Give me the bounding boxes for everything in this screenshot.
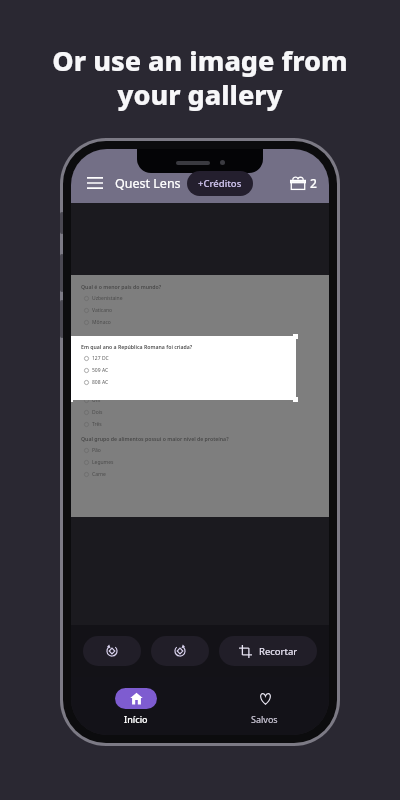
- staticText: Salvos: [251, 713, 278, 725]
- staticText: Mônaco: [92, 319, 111, 326]
- staticText: Em qual ano a República Romana foi criad…: [81, 335, 193, 342]
- staticText: Or use an image from your gallery: [24, 42, 376, 113]
- staticText: Três: [92, 421, 102, 428]
- button[interactable]: Rotate left: [83, 636, 141, 666]
- staticText: Uzbenistaine: [92, 295, 123, 302]
- button[interactable]: Menu: [81, 169, 109, 197]
- button[interactable]: Salvos: [200, 682, 329, 731]
- other: Rewards: [290, 175, 306, 191]
- staticText: Qual é o menor país do mundo?: [81, 283, 162, 290]
- staticText: Pão: [92, 447, 101, 454]
- staticText: Dois: [92, 409, 103, 416]
- staticText: Recortar: [259, 645, 298, 658]
- staticText: Legumes: [92, 459, 114, 466]
- button[interactable]: +Créditos: [187, 171, 253, 196]
- staticText: Quest Lens: [115, 175, 181, 192]
- button[interactable]: Recortar: [219, 636, 317, 666]
- staticText: Qual grupo de alimentos possui o maior n…: [81, 435, 229, 442]
- staticText: 2: [310, 175, 317, 191]
- button[interactable]: Rewards: [288, 175, 319, 191]
- button[interactable]: Início: [71, 682, 200, 731]
- staticText: +Créditos: [198, 177, 242, 190]
- staticText: 127 DC: [92, 355, 109, 362]
- staticText: 808 AC: [92, 379, 109, 386]
- staticText: Vaticano: [92, 307, 113, 314]
- staticText: Em qual ano a República Romana foi criad…: [81, 343, 193, 350]
- staticText: 127 DC: [92, 347, 109, 354]
- staticText: Um: [92, 397, 101, 404]
- staticText: Carne: [92, 471, 106, 478]
- button[interactable]: Rotate right: [151, 636, 209, 666]
- staticText: 509 AC: [92, 359, 109, 366]
- staticText: 509 AC: [92, 367, 109, 374]
- staticText: Início: [124, 713, 148, 725]
- staticText: 808 AC: [92, 371, 109, 378]
